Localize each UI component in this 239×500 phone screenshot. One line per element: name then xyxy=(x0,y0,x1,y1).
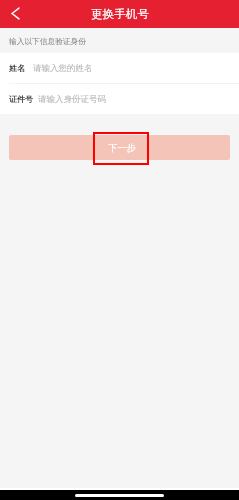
staticText: 下一步 xyxy=(108,142,137,154)
button[interactable]: 证件号 xyxy=(0,84,239,114)
button[interactable]: Back xyxy=(0,0,30,28)
staticText: 输入以下信息验证身份 xyxy=(9,37,86,47)
staticText: 证件号 xyxy=(9,94,33,104)
staticText: 请输入身份证号码 xyxy=(38,94,106,105)
staticText: 请输入您的姓名 xyxy=(33,63,93,74)
staticText: 更换手机号 xyxy=(91,7,149,22)
button[interactable]: 下一步 xyxy=(9,135,230,160)
staticText: 姓名 xyxy=(9,63,25,73)
button[interactable]: 姓名 xyxy=(0,53,239,83)
